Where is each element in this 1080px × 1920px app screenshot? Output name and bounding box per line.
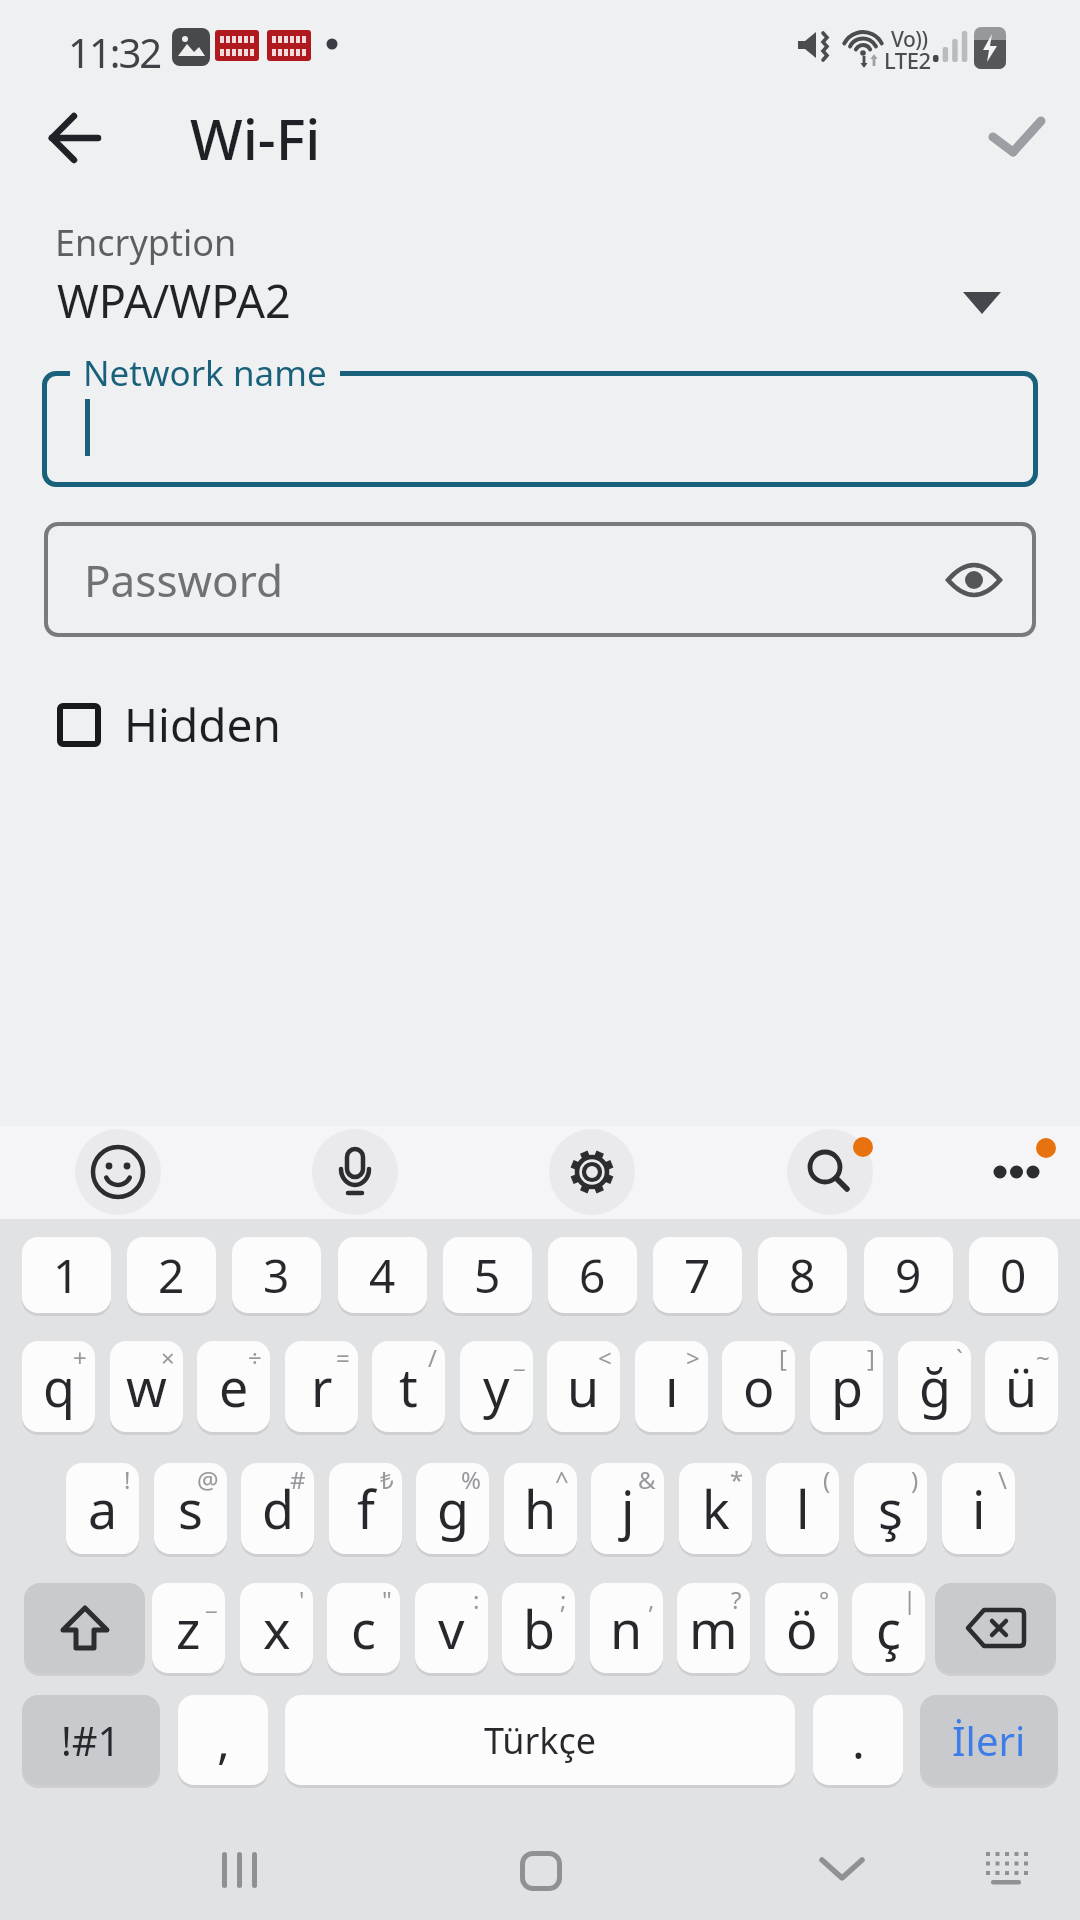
button[interactable]: 6 [548, 1237, 637, 1313]
button[interactable]: 5 [443, 1237, 532, 1313]
staticText: n [610, 1593, 643, 1664]
staticText: g [437, 1473, 469, 1544]
staticText: _ [206, 1583, 217, 1616]
button[interactable]: ç [852, 1583, 925, 1673]
button[interactable] [38, 104, 110, 176]
button[interactable]: t [372, 1341, 445, 1432]
staticText: ° [819, 1583, 830, 1616]
staticText: ^ [555, 1463, 569, 1496]
button[interactable]: Password [44, 522, 1036, 637]
button[interactable]: !#1 [22, 1695, 160, 1785]
button[interactable]: d [241, 1463, 314, 1554]
button[interactable] [75, 1129, 161, 1215]
button[interactable] [787, 1129, 873, 1215]
button[interactable]: i [942, 1463, 1015, 1554]
staticText: u [567, 1351, 600, 1422]
button[interactable]: ö [765, 1583, 838, 1673]
button[interactable] [975, 100, 1055, 180]
button[interactable] [42, 371, 1038, 487]
staticText: 3 [263, 1244, 290, 1307]
button[interactable]: ü [985, 1341, 1058, 1432]
button[interactable]: WPA/WPA2 [0, 264, 1080, 334]
button[interactable]: q [22, 1341, 95, 1432]
staticText: . [852, 1708, 865, 1773]
staticText: < [598, 1341, 612, 1374]
button[interactable]: ğ [898, 1341, 971, 1432]
button[interactable]: p [810, 1341, 883, 1432]
staticText: " [382, 1583, 392, 1616]
staticText: & [638, 1463, 656, 1496]
staticText: , [648, 1583, 655, 1616]
staticText: v [438, 1593, 465, 1664]
button[interactable]: w [110, 1341, 183, 1432]
button[interactable] [24, 1583, 145, 1673]
button[interactable]: l [766, 1463, 839, 1554]
button[interactable]: g [416, 1463, 489, 1554]
button[interactable]: k [679, 1463, 752, 1554]
button[interactable]: 1 [22, 1237, 111, 1313]
button[interactable]: 3 [232, 1237, 321, 1313]
staticText: 8 [789, 1244, 816, 1307]
staticText: ) [911, 1463, 919, 1496]
button[interactable]: h [504, 1463, 577, 1554]
button[interactable]: 0 [969, 1237, 1058, 1313]
button[interactable] [312, 1129, 398, 1215]
button[interactable]: y [460, 1341, 533, 1432]
staticText: / [428, 1341, 437, 1374]
staticText: WPA/WPA2 [57, 270, 291, 331]
button[interactable]: s [154, 1463, 227, 1554]
button[interactable]: İleri [920, 1695, 1058, 1785]
button[interactable]: 8 [758, 1237, 847, 1313]
button[interactable]: v [415, 1583, 488, 1673]
button[interactable] [935, 1583, 1056, 1673]
staticText: \ [998, 1463, 1007, 1496]
staticText: ç [876, 1593, 901, 1664]
staticText: o [743, 1351, 775, 1422]
button[interactable]: o [722, 1341, 795, 1432]
staticText: ` [956, 1341, 963, 1374]
button[interactable]: j [591, 1463, 664, 1554]
button[interactable]: 2 [127, 1237, 216, 1313]
button[interactable]: 4 [338, 1237, 427, 1313]
button[interactable]: , [178, 1695, 268, 1785]
staticText: 4 [369, 1244, 396, 1307]
staticText: 6 [579, 1244, 606, 1307]
button[interactable]: ş [854, 1463, 927, 1554]
button[interactable]: c [327, 1583, 400, 1673]
staticText: 2 [158, 1244, 185, 1307]
staticText: ı [665, 1351, 679, 1422]
staticText: p [831, 1351, 863, 1422]
button[interactable]: z [152, 1583, 225, 1673]
button[interactable]: . [813, 1695, 903, 1785]
button[interactable]: x [240, 1583, 313, 1673]
staticText: ÷ [248, 1341, 262, 1374]
button[interactable]: m [677, 1583, 750, 1673]
staticText: @ [197, 1463, 219, 1496]
button[interactable]: n [590, 1583, 663, 1673]
button[interactable] [975, 1840, 1045, 1900]
staticText: | [903, 1583, 917, 1616]
button[interactable]: 7 [653, 1237, 742, 1313]
staticText: e [219, 1351, 249, 1422]
button[interactable] [190, 1830, 290, 1910]
staticText: 5 [474, 1244, 501, 1307]
button[interactable]: e [197, 1341, 270, 1432]
staticText: Türkçe [484, 1716, 597, 1765]
staticText: Network name [83, 349, 327, 397]
button[interactable]: b [502, 1583, 575, 1673]
staticText: Wi-Fi [190, 100, 321, 176]
button[interactable]: Türkçe [285, 1695, 795, 1785]
button[interactable]: f [329, 1463, 402, 1554]
button[interactable]: Hidden [40, 685, 320, 765]
button[interactable]: 9 [864, 1237, 953, 1313]
staticText: # [290, 1463, 306, 1496]
button[interactable] [800, 1830, 884, 1910]
button[interactable]: u [547, 1341, 620, 1432]
button[interactable] [975, 1129, 1061, 1215]
button[interactable]: a [66, 1463, 139, 1554]
button[interactable] [549, 1129, 635, 1215]
button[interactable] [500, 1830, 580, 1910]
button[interactable]: r [285, 1341, 358, 1432]
button[interactable]: ı [635, 1341, 708, 1432]
staticText: ş [878, 1473, 903, 1544]
